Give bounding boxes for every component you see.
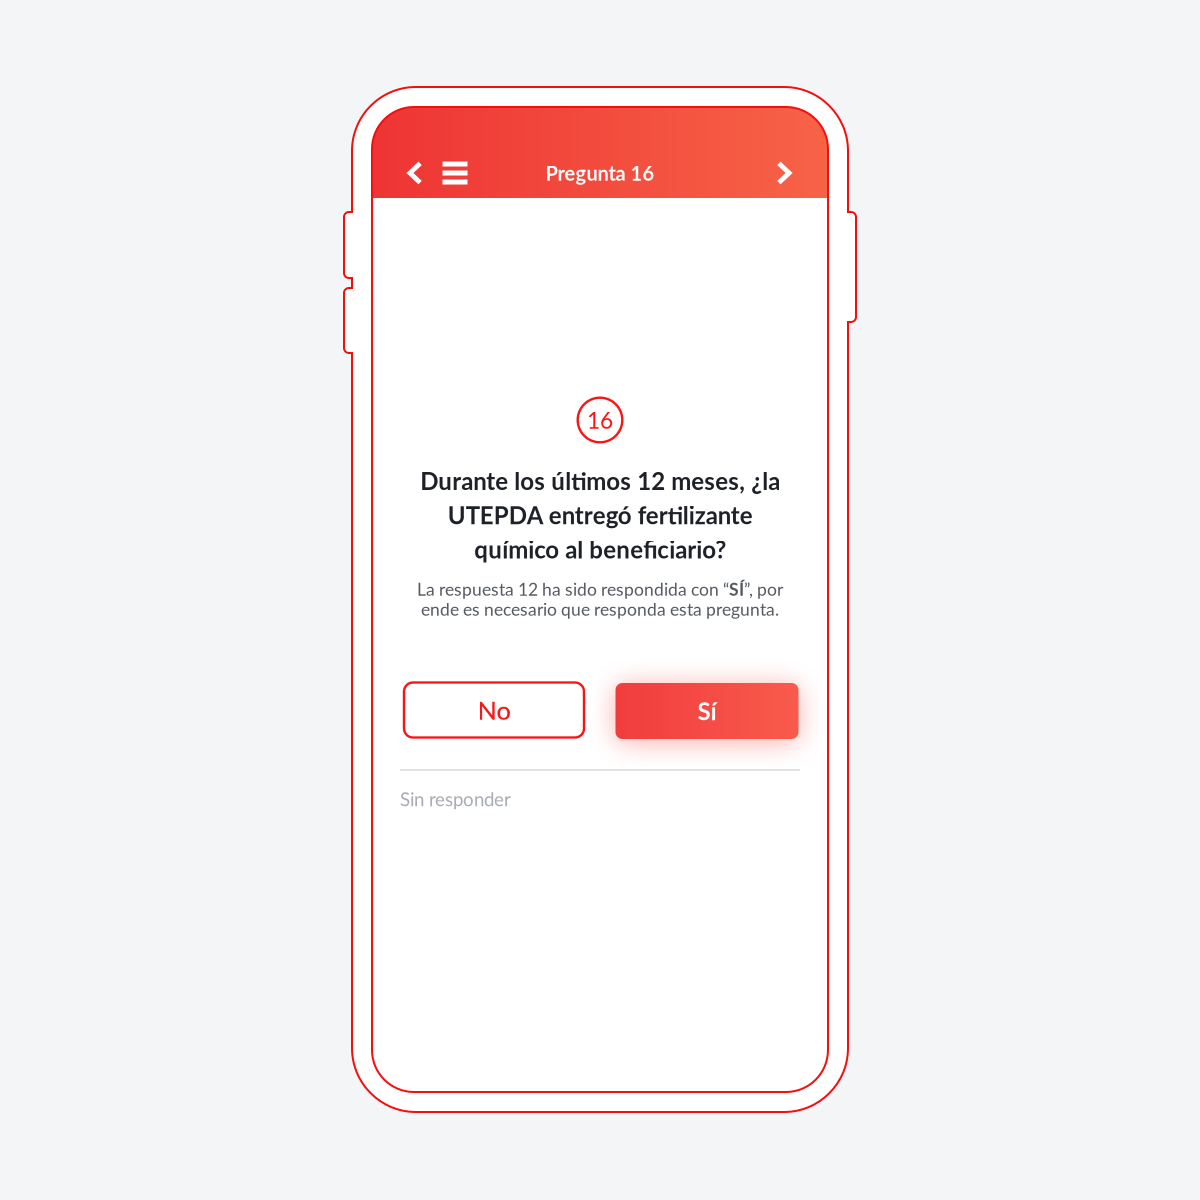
staticText: Durante los últimos 12 meses, ¿la UTEPDA… xyxy=(420,464,780,566)
button[interactable]: No xyxy=(404,682,584,737)
button[interactable]: Sí xyxy=(615,683,798,739)
button[interactable]: Menú xyxy=(434,148,476,198)
button[interactable]: Atrás xyxy=(396,148,434,198)
button[interactable]: Siguiente xyxy=(764,148,804,198)
staticText: No xyxy=(477,695,510,725)
staticText: 16 xyxy=(587,406,613,434)
staticText: Sin responder xyxy=(400,788,511,810)
staticText: La respuesta 12 ha sido respondida con “… xyxy=(417,578,783,599)
staticText: Sí xyxy=(697,697,716,725)
staticText: Pregunta 16 xyxy=(545,161,654,185)
staticText: ende es necesario que responda esta preg… xyxy=(421,598,779,619)
